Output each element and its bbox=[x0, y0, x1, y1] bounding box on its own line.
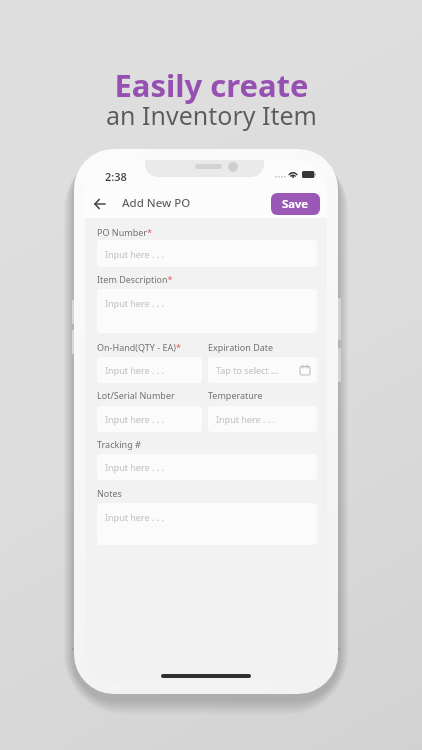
staticText: Input here . . . bbox=[105, 248, 164, 260]
staticText: Lot/Serial Number bbox=[97, 389, 175, 401]
staticText: an Inventory Item bbox=[106, 98, 317, 132]
button[interactable]: Input here . . . bbox=[97, 454, 317, 480]
staticText: Add New PO bbox=[122, 195, 191, 211]
button[interactable]: Save bbox=[271, 193, 320, 215]
staticText: Input here . . . bbox=[105, 413, 164, 425]
button[interactable]: Input here . . . bbox=[208, 406, 317, 432]
staticText: PO Number* bbox=[97, 226, 152, 238]
staticText: Temperature bbox=[208, 389, 263, 401]
staticText: Expiration Date bbox=[208, 341, 274, 353]
button[interactable]: Input here . . . bbox=[97, 503, 317, 545]
staticText: On-Hand(QTY - EA)* bbox=[97, 341, 181, 353]
staticText: 2:38 bbox=[105, 169, 127, 184]
staticText: Easily create bbox=[114, 64, 309, 106]
button[interactable]: Input here . . . bbox=[97, 406, 202, 432]
button[interactable]: Input here . . . bbox=[97, 289, 317, 333]
button[interactable]: Back bbox=[85, 193, 113, 215]
staticText: Notes bbox=[97, 487, 122, 499]
staticText: Input here . . . bbox=[216, 413, 275, 425]
staticText: Input here . . . bbox=[105, 297, 164, 309]
button[interactable]: Input here . . . bbox=[97, 357, 202, 383]
staticText: Input here . . . bbox=[105, 461, 164, 473]
staticText: Input here . . . bbox=[105, 511, 164, 523]
staticText: Tap to select ... bbox=[216, 364, 279, 376]
staticText: Save bbox=[282, 196, 309, 212]
staticText: Item Description* bbox=[97, 273, 173, 285]
button[interactable]: Input here . . . bbox=[97, 240, 317, 267]
button[interactable]: Tap to select ... bbox=[208, 357, 317, 383]
staticText: Tracking # bbox=[97, 438, 141, 450]
staticText: Input here . . . bbox=[105, 364, 164, 376]
